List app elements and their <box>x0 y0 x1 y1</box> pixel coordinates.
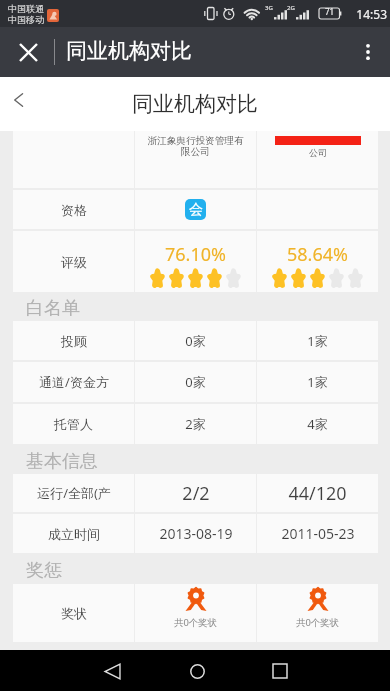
staticText: 0家 <box>185 373 206 391</box>
staticText: 71 <box>319 6 340 17</box>
staticText: 0家 <box>185 332 206 350</box>
staticText: 2G <box>287 4 295 12</box>
staticText: 投顾 <box>61 333 87 349</box>
staticText: 奖惩 <box>26 559 62 582</box>
staticText: 2011-05-23 <box>281 524 355 543</box>
button[interactable]: 浙江象舆行投资管理有限公司 <box>13 131 378 188</box>
staticText: 4家 <box>307 415 328 433</box>
staticText: 共0个奖状 <box>174 616 217 629</box>
staticText: 1家 <box>307 332 328 350</box>
staticText: 会 <box>189 201 203 219</box>
staticText: 通道/资金方 <box>39 373 109 391</box>
staticText: 浙江象舆行投资管理有限公司 <box>145 135 246 158</box>
button[interactable]: Recent apps <box>262 653 298 689</box>
button[interactable]: 通道/资金方 <box>13 362 378 402</box>
staticText: 白名单 <box>26 297 80 320</box>
button[interactable]: 评级 <box>13 231 378 292</box>
staticText: 奖状 <box>61 605 87 621</box>
staticText: 1家 <box>307 373 328 391</box>
button[interactable]: 托管人 <box>13 404 378 444</box>
staticText: 资格 <box>61 202 87 218</box>
staticText: 58.64% <box>287 242 348 267</box>
staticText: 评级 <box>61 254 87 270</box>
staticText: 基本信息 <box>26 450 98 473</box>
staticText: 76.10% <box>165 242 226 267</box>
staticText: 托管人 <box>54 416 93 432</box>
staticText: 成立时间 <box>48 526 100 542</box>
staticText: 同业机构对比 <box>66 38 192 64</box>
button[interactable]: 资格 <box>13 190 378 229</box>
staticText: 运行/全部(产 <box>37 484 111 502</box>
staticText: 中国移动 <box>8 14 44 25</box>
button[interactable]: Back <box>94 653 130 689</box>
staticText: 2/2 <box>182 481 210 506</box>
staticText: 共0个奖状 <box>296 616 339 629</box>
button[interactable]: 运行/全部(产 <box>13 474 378 512</box>
button[interactable]: Home <box>179 653 215 689</box>
staticText: 2013-08-19 <box>159 524 233 543</box>
staticText: 公司 <box>309 147 327 158</box>
button[interactable]: 奖状 <box>13 584 378 642</box>
staticText: 3G <box>265 4 273 12</box>
button[interactable]: 投顾 <box>13 321 378 360</box>
staticText: 2家 <box>185 415 206 433</box>
button[interactable]: More options <box>346 27 390 77</box>
button[interactable]: 成立时间 <box>13 514 378 553</box>
staticText: 14:53 <box>356 6 387 22</box>
button[interactable]: Close <box>0 27 50 77</box>
button[interactable]: Back <box>0 77 38 131</box>
staticText: 44/120 <box>288 481 347 506</box>
staticText: 同业机构对比 <box>132 91 258 117</box>
staticText: 中国联通 <box>8 3 44 14</box>
